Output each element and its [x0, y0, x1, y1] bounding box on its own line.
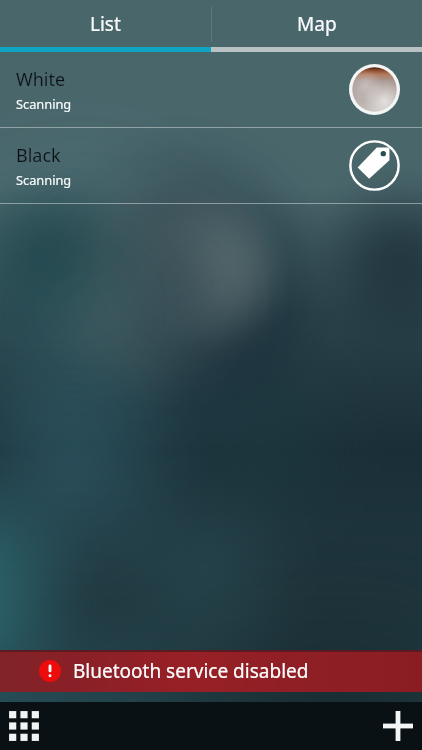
- staticText: List: [90, 11, 121, 37]
- button[interactable]: White: [0, 52, 422, 127]
- button[interactable]: List: [0, 0, 211, 47]
- button[interactable]: Black: [0, 128, 422, 203]
- staticText: White: [16, 67, 66, 92]
- staticText: Map: [297, 11, 337, 37]
- button[interactable]: Bluetooth service disabled: [0, 650, 422, 692]
- staticText: Scanning: [16, 95, 72, 112]
- staticText: Scanning: [16, 171, 72, 188]
- button[interactable]: Add: [381, 709, 415, 743]
- button[interactable]: Map: [211, 0, 422, 47]
- staticText: Bluetooth service disabled: [73, 658, 309, 684]
- button[interactable]: Apps: [6, 708, 42, 744]
- staticText: Black: [16, 143, 61, 168]
